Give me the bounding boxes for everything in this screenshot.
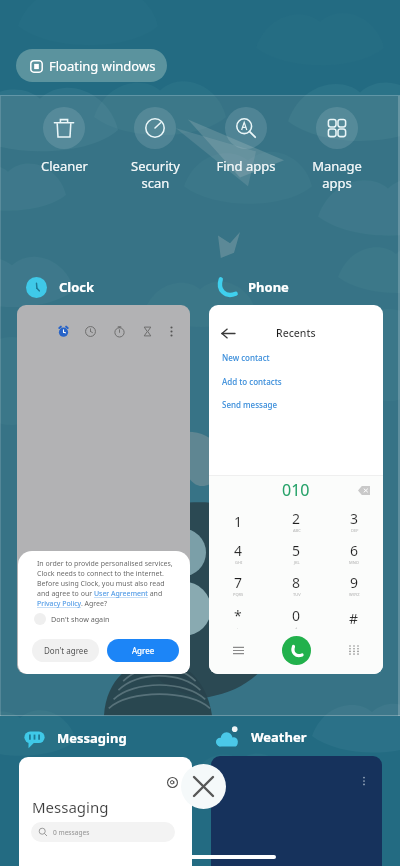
staticText: New contact [222,352,270,363]
staticText: 9 [350,573,359,592]
button[interactable]: More options [211,756,382,866]
button[interactable]: Alarm [17,305,190,674]
staticText: 2 [292,509,301,528]
button[interactable]: 8 [267,570,325,600]
button[interactable]: Account [160,770,184,794]
button[interactable]: Close [181,764,226,809]
staticText: Messaging [32,797,109,817]
button[interactable]: Add to contacts [209,370,383,392]
staticText: Agree [132,645,155,656]
staticText: MNO [349,560,359,565]
staticText: * [234,606,242,625]
staticText: Floating windows [49,57,156,75]
staticText: Send message [222,399,278,410]
button[interactable]: 4 [209,538,267,568]
staticText: In order to provide personalised service… [37,559,173,609]
staticText: Phone [248,278,289,296]
button[interactable]: Call log [209,630,267,670]
staticText: Don't agree [44,645,88,656]
button[interactable]: 2 [267,506,325,536]
button[interactable]: # [325,603,383,633]
staticText: WXYZ [349,592,360,597]
staticText: Clock [59,278,95,296]
button[interactable]: Send message [209,393,383,415]
button[interactable]: 9 [325,570,383,600]
button[interactable]: Find apps [201,107,291,175]
staticText: 010 [282,479,310,501]
staticText: . [237,625,239,630]
button[interactable]: Recents [209,305,383,674]
staticText: Security scan [131,157,180,192]
button[interactable]: Alarm [56,324,70,338]
button[interactable]: Agree [107,639,179,662]
button[interactable]: Backspace [354,480,374,500]
button[interactable]: More [164,324,178,338]
button[interactable]: 6 [325,538,383,568]
staticText: Add to contacts [222,376,282,387]
staticText: 3 [350,509,359,528]
staticText: Manage apps [312,157,362,192]
button[interactable]: Weather [214,722,307,752]
staticText: Find apps [216,157,276,175]
staticText: 0 messages [53,828,90,837]
button[interactable]: Timer [140,324,154,338]
button[interactable]: Back [217,322,239,344]
button[interactable]: Don't show again [34,612,110,626]
staticText: 4 [234,541,243,560]
staticText: 8 [292,573,301,592]
button[interactable]: Floating windows [16,49,167,82]
button[interactable]: Messaging [23,724,127,752]
staticText: GHI [235,560,243,565]
staticText: 5 [292,541,301,560]
button[interactable]: Call [282,636,311,665]
button[interactable]: Cleaner [19,107,109,175]
button[interactable]: 7 [209,570,267,600]
button[interactable]: Don't agree [32,639,99,662]
staticText: TUV [293,592,301,597]
staticText: PQRS [233,592,244,597]
staticText: 0 [292,606,301,625]
button[interactable]: 5 [267,538,325,568]
staticText: Recents [276,326,316,340]
staticText: 6 [350,541,359,560]
button[interactable]: More options [354,771,374,791]
button[interactable]: 0 messages [31,822,175,842]
staticText: + [295,625,298,630]
button[interactable]: Manage apps [292,107,382,192]
staticText: DEF [351,528,359,533]
button[interactable]: Keypad [325,630,383,670]
button[interactable]: 0 [267,603,325,633]
staticText: Don't show again [51,614,110,624]
staticText: ABC [293,528,301,533]
button[interactable]: Security scan [110,107,200,192]
staticText: Cleaner [41,157,88,175]
staticText: JKL [294,560,300,565]
button[interactable]: 1 [209,506,267,536]
staticText: Weather [251,728,307,746]
staticText: 1 [234,512,243,531]
button[interactable]: * [209,603,267,633]
button[interactable]: New contact [209,346,383,368]
button[interactable]: Clock [83,324,97,338]
button[interactable]: 3 [325,506,383,536]
button[interactable]: Account [19,757,192,866]
button[interactable]: Clock [26,275,95,299]
button[interactable]: Stopwatch [112,324,126,338]
staticText: Messaging [57,729,127,747]
staticText: # [349,609,359,628]
button[interactable]: Phone [215,272,289,302]
staticText: 7 [234,573,243,592]
